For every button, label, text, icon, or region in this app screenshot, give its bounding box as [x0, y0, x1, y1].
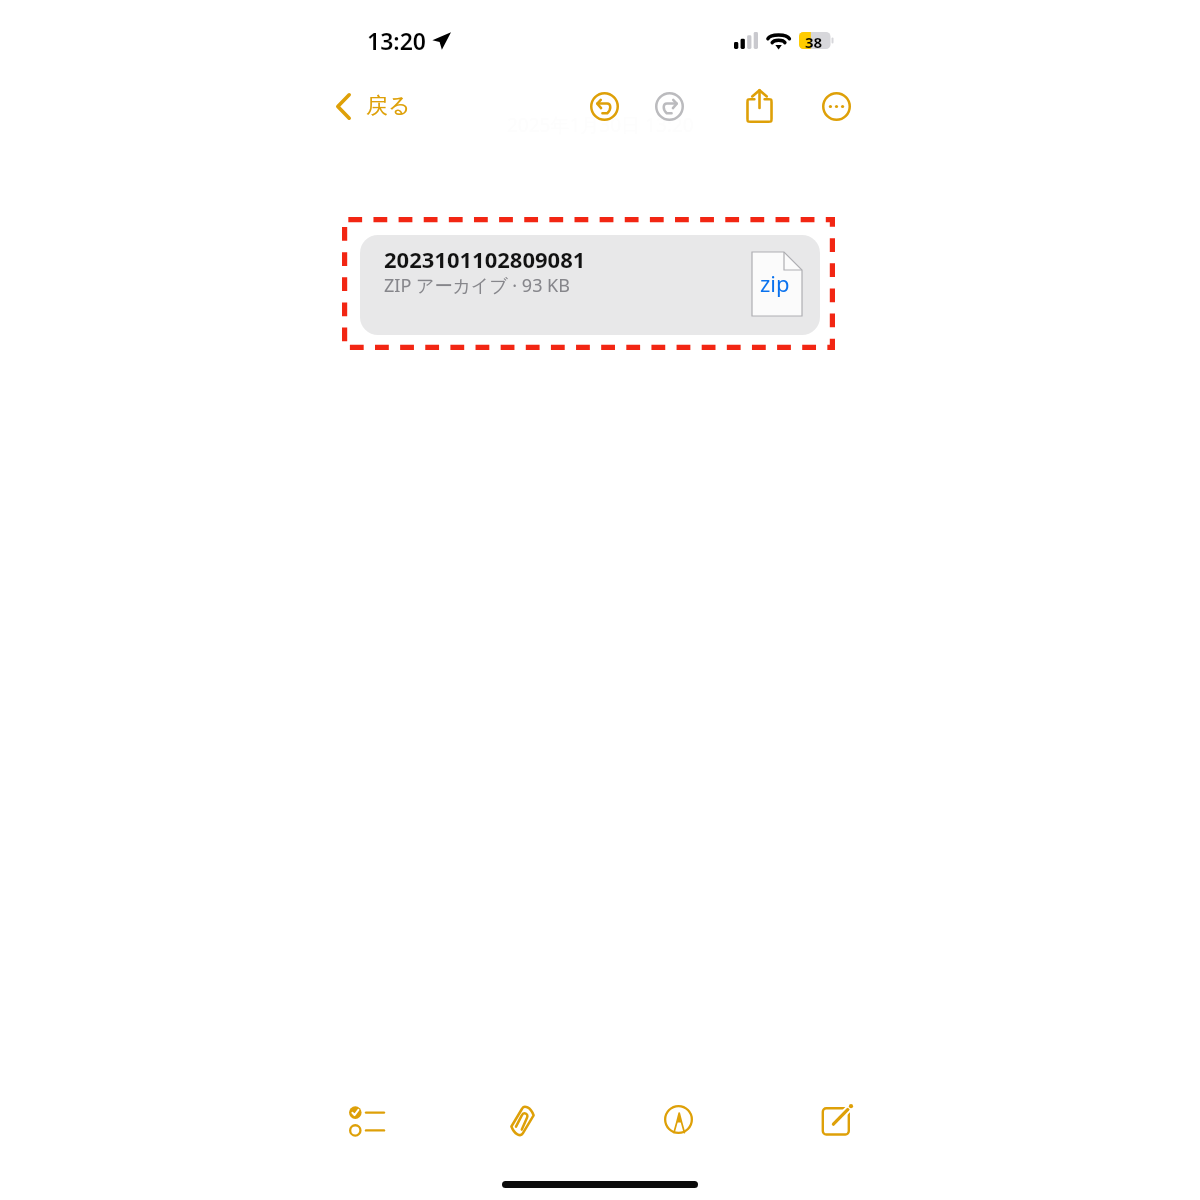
staticText: 戻る	[366, 92, 411, 120]
button[interactable]: Checklist	[339, 1096, 393, 1146]
button[interactable]: Markup	[656, 1098, 701, 1142]
button[interactable]: New note	[814, 1096, 858, 1142]
button[interactable]: Attach file	[501, 1095, 547, 1145]
button[interactable]: More options	[814, 84, 859, 129]
staticText: 2025年1月30日 13:20	[507, 112, 694, 138]
staticText: 13:20	[367, 25, 426, 56]
button[interactable]: Redo	[647, 84, 692, 129]
staticText: zip	[760, 268, 790, 298]
staticText: 38	[805, 32, 823, 49]
button[interactable]: Back	[328, 86, 419, 126]
staticText: ZIP アーカイブ · 93 KB	[384, 273, 570, 298]
staticText: 2023101102809081	[384, 244, 586, 274]
button[interactable]: Share	[737, 83, 782, 128]
button[interactable]: Undo	[582, 84, 627, 129]
button[interactable]: 2023101102809081	[360, 235, 820, 335]
